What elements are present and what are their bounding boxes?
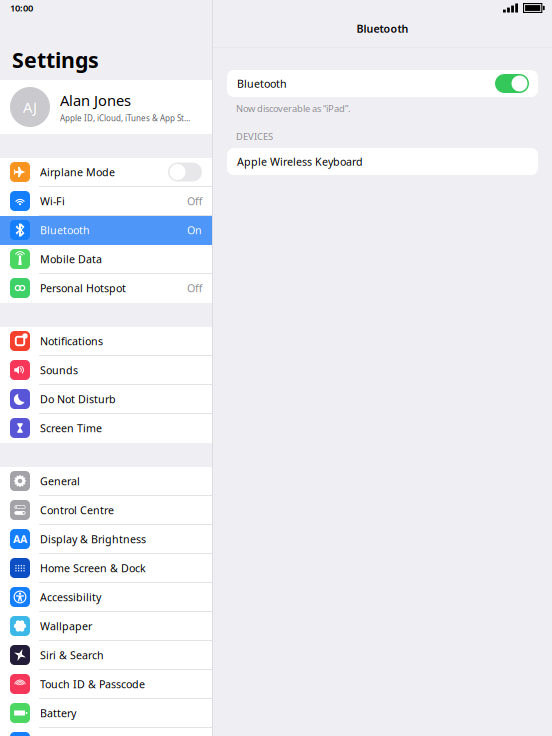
button[interactable]: Battery [0,699,212,728]
button[interactable]: Home Screen & Dock [0,554,212,583]
staticText: Alan Jones [60,90,131,110]
button[interactable]: Wallpaper [0,612,212,641]
staticText: Control Centre [40,503,114,517]
button[interactable]: Personal Hotspot [0,274,212,303]
staticText: Battery [40,706,76,720]
button[interactable]: Do Not Disturb [0,385,212,414]
button[interactable]: Privacy [0,728,212,736]
staticText: Off [187,281,202,295]
staticText: Home Screen & Dock [40,561,146,575]
staticText: Settings [12,46,99,74]
staticText: On [187,223,202,237]
staticText: Mobile Data [40,252,102,266]
staticText: Display & Brightness [40,532,146,546]
staticText: Notifications [40,334,103,348]
staticText: DEVICES [236,130,273,143]
button[interactable]: General [0,467,212,496]
button[interactable]: Siri & Search [0,641,212,670]
button[interactable]: Control Centre [0,496,212,525]
button[interactable]: Notifications [0,327,212,356]
staticText: AJ [23,97,37,117]
staticText: Siri & Search [40,648,104,662]
staticText: Bluetooth [40,223,90,237]
staticText: Off [187,194,202,208]
staticText: Screen Time [40,421,102,435]
staticText: Apple Wireless Keyboard [237,154,363,169]
button[interactable]: Accessibility [0,583,212,612]
button[interactable]: Wi-Fi [0,187,212,216]
staticText: Personal Hotspot [40,281,126,295]
staticText: Bluetooth [356,21,408,36]
staticText: Wallpaper [40,619,92,633]
staticText: Apple ID, iCloud, iTunes & App St… [60,113,190,123]
button[interactable]: Screen Time [0,414,212,443]
button[interactable]: Bluetooth [0,216,212,245]
button[interactable]: AA [0,525,212,554]
staticText: General [40,474,80,488]
staticText: Wi-Fi [40,194,65,208]
staticText: Airplane Mode [40,165,115,179]
button[interactable]: Mobile Data [0,245,212,274]
button[interactable]: Apple Wireless Keyboard [227,148,538,175]
staticText: Touch ID & Passcode [40,677,145,691]
button[interactable]: Airplane Mode [0,158,212,187]
staticText: Now discoverable as “iPad”. [236,102,351,115]
button[interactable]: Touch ID & Passcode [0,670,212,699]
button[interactable]: Sounds [0,356,212,385]
staticText: AA [13,532,27,546]
staticText: Accessibility [40,590,101,604]
button[interactable]: Bluetooth [227,70,538,97]
staticText: Bluetooth [237,76,287,91]
staticText: Sounds [40,363,78,377]
staticText: Do Not Disturb [40,392,116,406]
button[interactable]: AJ [0,80,212,134]
staticText: 10:00 [10,2,33,14]
